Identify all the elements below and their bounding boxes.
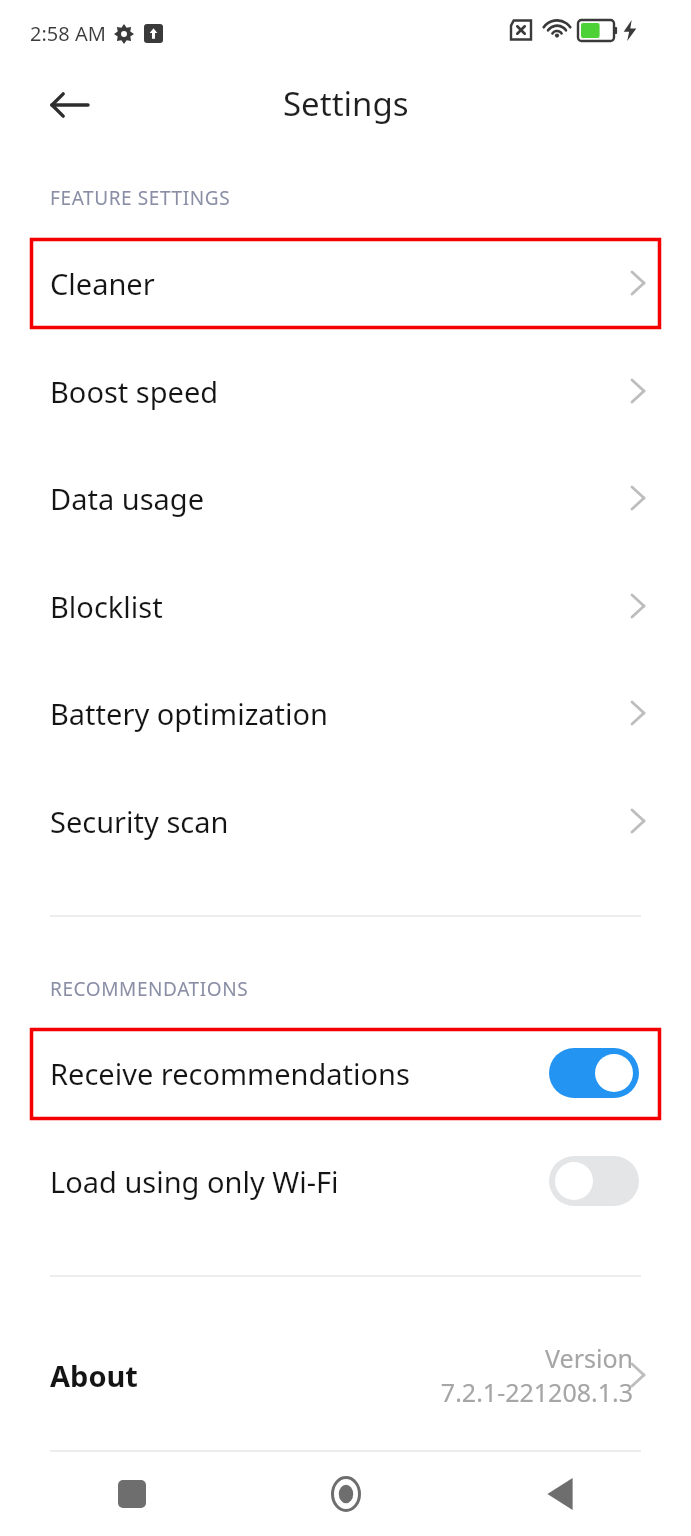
- staticText: FEATURE SETTINGS: [50, 185, 231, 211]
- button[interactable]: Blocklist: [0, 552, 691, 660]
- button[interactable]: Battery optimization: [0, 659, 691, 767]
- staticText: Security scan: [50, 802, 229, 841]
- staticText: About: [50, 1356, 138, 1395]
- button[interactable]: Receive recommendations: [0, 1019, 691, 1127]
- button[interactable]: Security scan: [0, 767, 691, 875]
- button[interactable]: Load using only Wi-Fi: [0, 1127, 691, 1235]
- staticText: Receive recommendations: [50, 1054, 410, 1093]
- button[interactable]: Data usage: [0, 444, 691, 552]
- button[interactable]: Cleaner: [0, 229, 691, 337]
- staticText: Load using only Wi-Fi: [50, 1162, 339, 1201]
- button[interactable]: Boost speed: [0, 337, 691, 445]
- staticText: RECOMMENDATIONS: [50, 976, 249, 1002]
- staticText: Settings: [283, 81, 409, 126]
- button[interactable]: About: [0, 1315, 691, 1435]
- staticText: Cleaner: [50, 264, 155, 303]
- staticText: Blocklist: [50, 587, 163, 626]
- staticText: Version: [545, 1341, 633, 1375]
- button[interactable]: Back: [34, 69, 106, 141]
- button[interactable]: Recent apps: [0, 1452, 231, 1536]
- staticText: 7.2.1-221208.1.3: [440, 1375, 633, 1409]
- staticText: Boost speed: [50, 372, 219, 411]
- staticText: Battery optimization: [50, 694, 328, 733]
- staticText: Data usage: [50, 479, 204, 518]
- button[interactable]: Back: [461, 1452, 691, 1536]
- staticText: 2:58 AM: [30, 20, 106, 47]
- button[interactable]: Home: [231, 1452, 461, 1536]
